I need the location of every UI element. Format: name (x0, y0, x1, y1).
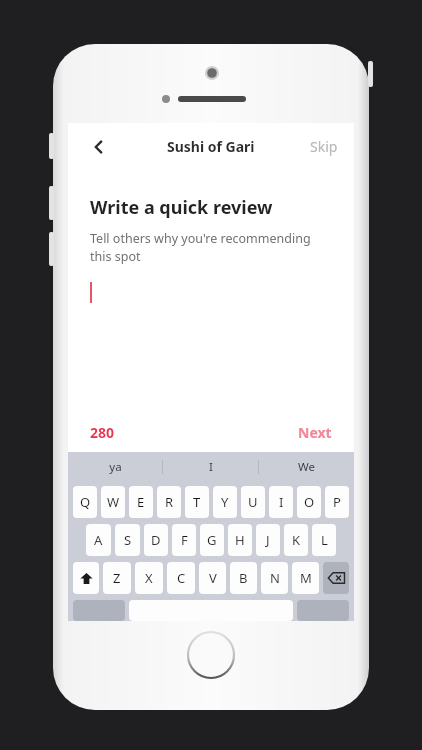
staticText: J (266, 531, 270, 549)
staticText: 280 (90, 423, 115, 442)
button[interactable]: Skip (294, 125, 354, 168)
button[interactable]: T (185, 486, 209, 518)
staticText: C (177, 569, 186, 587)
button[interactable]: B (230, 562, 257, 594)
staticText: P (333, 493, 341, 511)
staticText: Z (113, 569, 121, 587)
button[interactable]: We (259, 452, 354, 482)
button[interactable]: Next (298, 419, 354, 446)
staticText: S (124, 531, 132, 549)
staticText: W (107, 493, 120, 511)
button[interactable]: D (144, 524, 168, 556)
button[interactable]: R (157, 486, 181, 518)
staticText: N (270, 569, 280, 587)
staticText: X (145, 569, 153, 587)
button[interactable]: W (101, 486, 125, 518)
button[interactable]: F (172, 524, 196, 556)
staticText: M (300, 569, 312, 587)
button[interactable]: V (199, 562, 226, 594)
staticText: U (248, 493, 258, 511)
button[interactable]: Shift (73, 562, 99, 594)
button[interactable]: U (241, 486, 265, 518)
button[interactable]: 280 (68, 419, 115, 446)
button[interactable]: G (200, 524, 224, 556)
button[interactable]: J (256, 524, 280, 556)
button[interactable]: C (167, 562, 195, 594)
button[interactable]: X (135, 562, 163, 594)
staticText: E (137, 493, 145, 511)
staticText: Next (298, 423, 332, 442)
staticText: K (292, 531, 301, 549)
staticText: I (279, 493, 284, 511)
button[interactable]: Y (213, 486, 237, 518)
button[interactable]: ya (68, 452, 162, 482)
button[interactable]: Q (73, 486, 97, 518)
button[interactable]: S (115, 524, 140, 556)
button[interactable]: N (261, 562, 288, 594)
button[interactable]: I (163, 452, 258, 482)
staticText: We (298, 459, 315, 475)
staticText: ya (109, 459, 122, 475)
staticText: Skip (310, 137, 338, 156)
button[interactable]: K (284, 524, 308, 556)
staticText: G (207, 531, 217, 549)
staticText: Y (221, 493, 229, 511)
button[interactable]: L (312, 524, 336, 556)
button[interactable]: I (269, 486, 293, 518)
staticText: Tell others why you're recommending this… (90, 230, 311, 265)
button[interactable] (68, 282, 354, 412)
button[interactable]: Backspace (323, 562, 349, 594)
staticText: R (165, 493, 174, 511)
staticText: D (151, 531, 161, 549)
staticText: V (209, 569, 217, 587)
staticText: O (304, 493, 315, 511)
staticText: Sushi of Gari (167, 137, 255, 156)
staticText: I (209, 459, 213, 475)
staticText: Q (80, 493, 91, 511)
button[interactable]: Z (103, 562, 131, 594)
staticText: T (193, 493, 201, 511)
button[interactable]: Back (82, 130, 116, 164)
staticText: L (321, 531, 328, 549)
staticText: Write a quick review (90, 195, 273, 220)
button[interactable]: E (129, 486, 153, 518)
button[interactable]: P (325, 486, 349, 518)
button[interactable]: O (297, 486, 321, 518)
button[interactable]: A (86, 524, 111, 556)
staticText: F (181, 531, 188, 549)
staticText: B (239, 569, 248, 587)
button[interactable]: M (292, 562, 319, 594)
staticText: H (235, 531, 245, 549)
button[interactable]: H (228, 524, 252, 556)
staticText: A (94, 531, 103, 549)
